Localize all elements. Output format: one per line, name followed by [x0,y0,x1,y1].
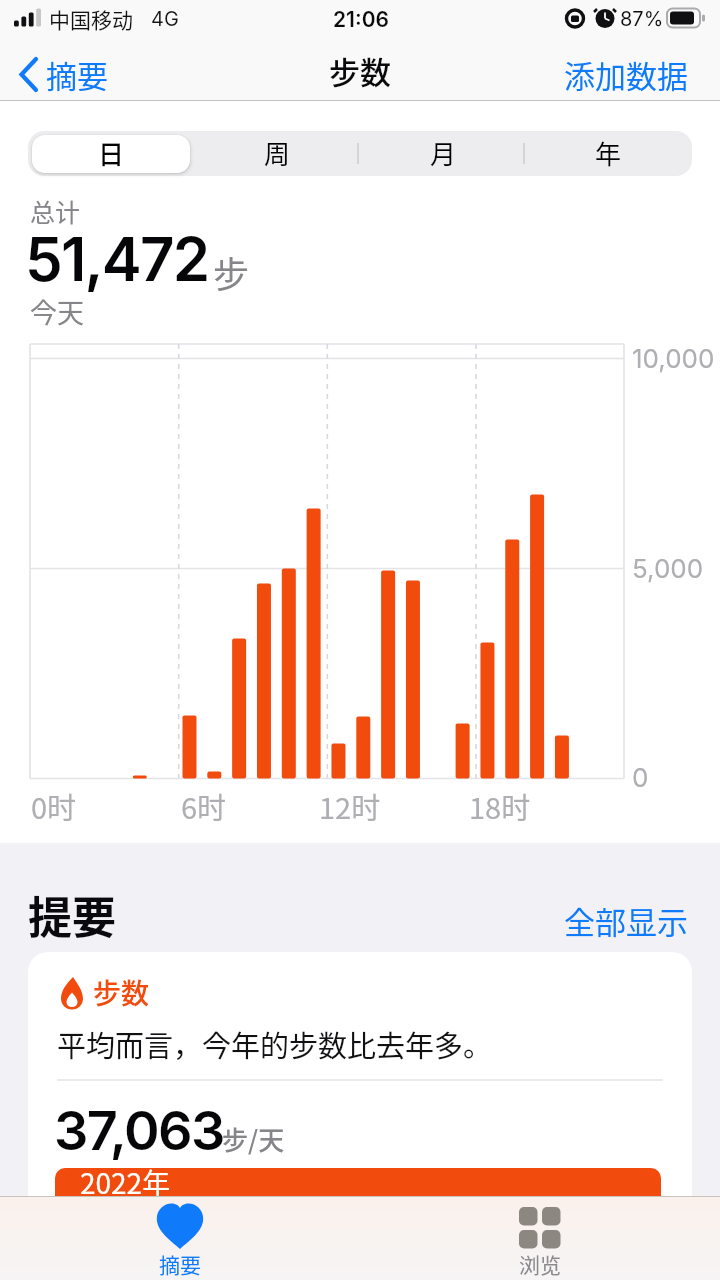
staticText: 步 [213,246,250,298]
staticText: 今天 [30,292,84,331]
staticText: 步数 [93,972,150,1013]
staticText: 10,000 [632,343,715,374]
staticText: 总计 [30,193,81,229]
staticText: 周 [264,134,291,172]
staticText: 6时 [181,785,227,827]
button[interactable] [540,895,690,945]
staticText: 12时 [319,785,381,827]
staticText: 摘要 [46,52,108,97]
staticText: 87% [620,7,664,31]
staticText: 中国移动 [49,4,133,34]
staticText: 37,063 [54,1098,224,1163]
button[interactable] [550,50,695,98]
staticText: 浏览 [519,1249,561,1279]
staticText: 步数 [329,48,391,93]
staticText: 2022年 [80,1162,171,1203]
staticText: 日 [98,134,125,172]
staticText: 21:06 [333,7,389,32]
button[interactable] [194,131,360,176]
staticText: 4G [151,7,179,31]
staticText: 0 [632,762,649,793]
staticText: 平均而言，今年的步数比去年多。 [57,1023,493,1065]
staticText: 步/天 [222,1120,285,1158]
staticText: 全部显示 [564,898,688,943]
staticText: 月 [430,134,457,172]
staticText: 摘要 [159,1249,201,1279]
staticText: 5,000 [632,553,704,584]
button[interactable]: 步数 [28,952,692,1242]
button[interactable] [360,131,526,176]
staticText: 51,472 [25,223,209,296]
staticText: 年 [595,134,622,172]
button[interactable] [470,1197,610,1280]
button[interactable] [14,50,124,98]
staticText: 添加数据 [564,52,688,97]
staticText: 18时 [469,785,531,827]
button[interactable] [28,131,194,176]
button[interactable] [110,1197,250,1280]
button[interactable] [526,131,692,176]
staticText: 0时 [31,785,77,827]
staticText: 提要 [28,883,116,947]
